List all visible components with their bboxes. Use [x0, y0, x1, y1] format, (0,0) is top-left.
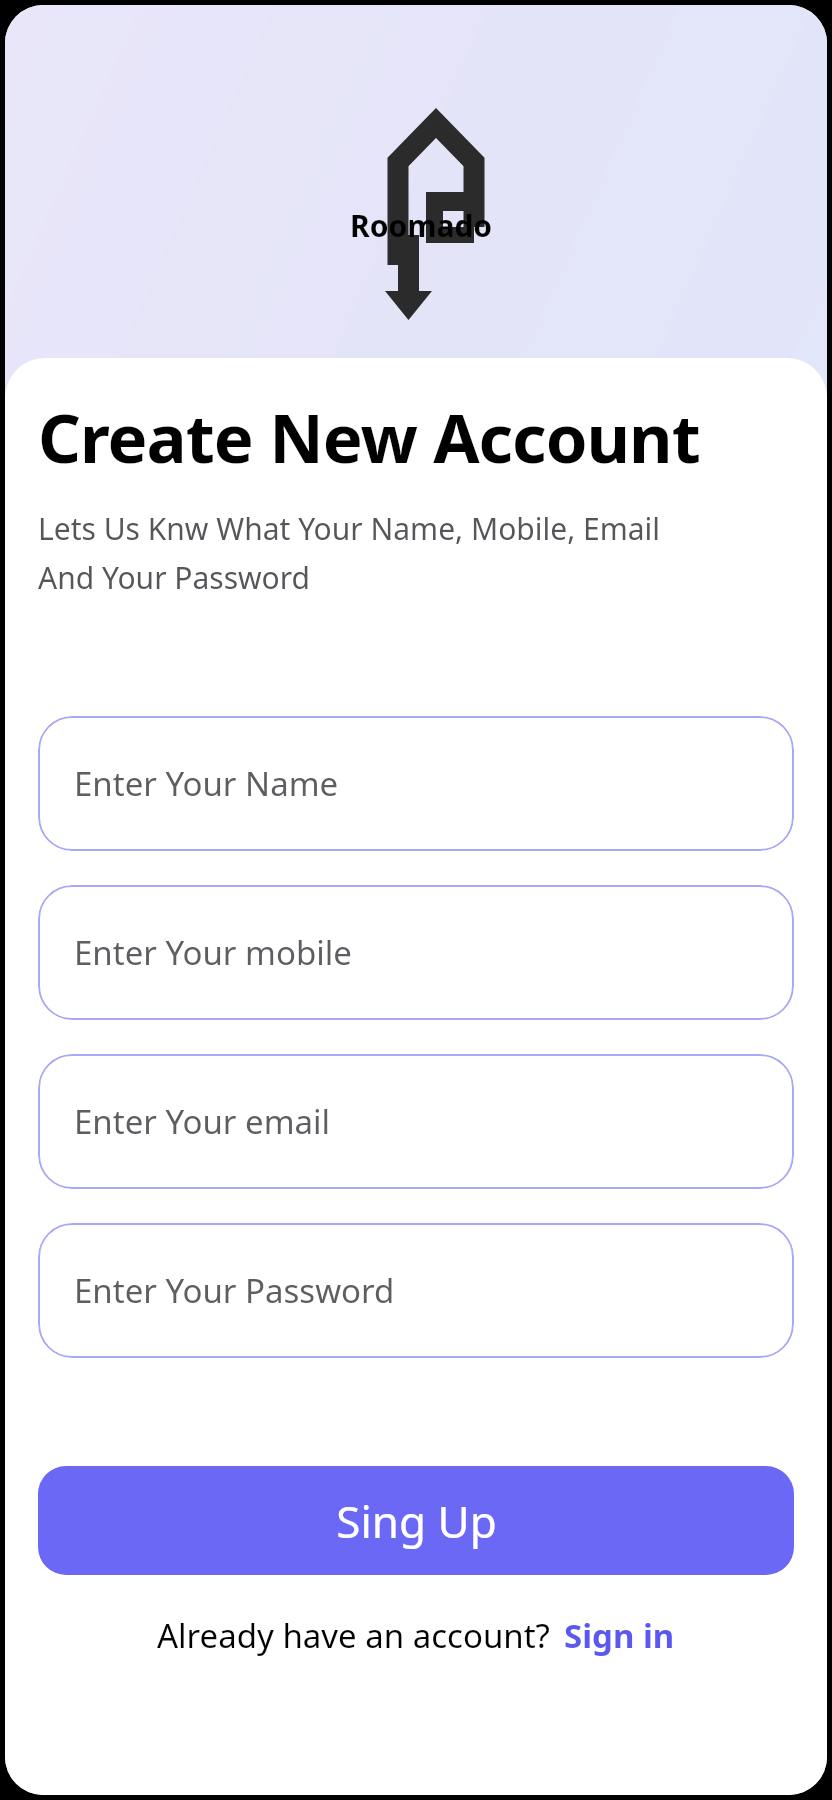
staticText: Sing Up	[336, 1491, 497, 1551]
button[interactable]: Enter Your mobile	[38, 885, 794, 1020]
staticText: Sign in	[564, 1613, 675, 1658]
button[interactable]: Enter Your Password	[38, 1223, 794, 1358]
staticText: Create New Account	[38, 391, 700, 482]
button[interactable]: Sing Up	[38, 1466, 794, 1575]
staticText: Enter Your mobile	[74, 930, 352, 975]
staticText: Enter Your Password	[74, 1268, 395, 1313]
staticText: Enter Your Name	[74, 761, 339, 806]
staticText: And Your Password	[38, 557, 311, 598]
staticText: Already have an account?	[157, 1613, 550, 1658]
button[interactable]: Sign in	[564, 1613, 675, 1658]
button[interactable]: Enter Your Name	[38, 716, 794, 851]
button[interactable]: Enter Your email	[38, 1054, 794, 1189]
staticText: Roomado	[350, 205, 493, 246]
staticText: Lets Us Knw What Your Name, Mobile, Emai…	[38, 508, 661, 549]
staticText: Enter Your email	[74, 1099, 331, 1144]
